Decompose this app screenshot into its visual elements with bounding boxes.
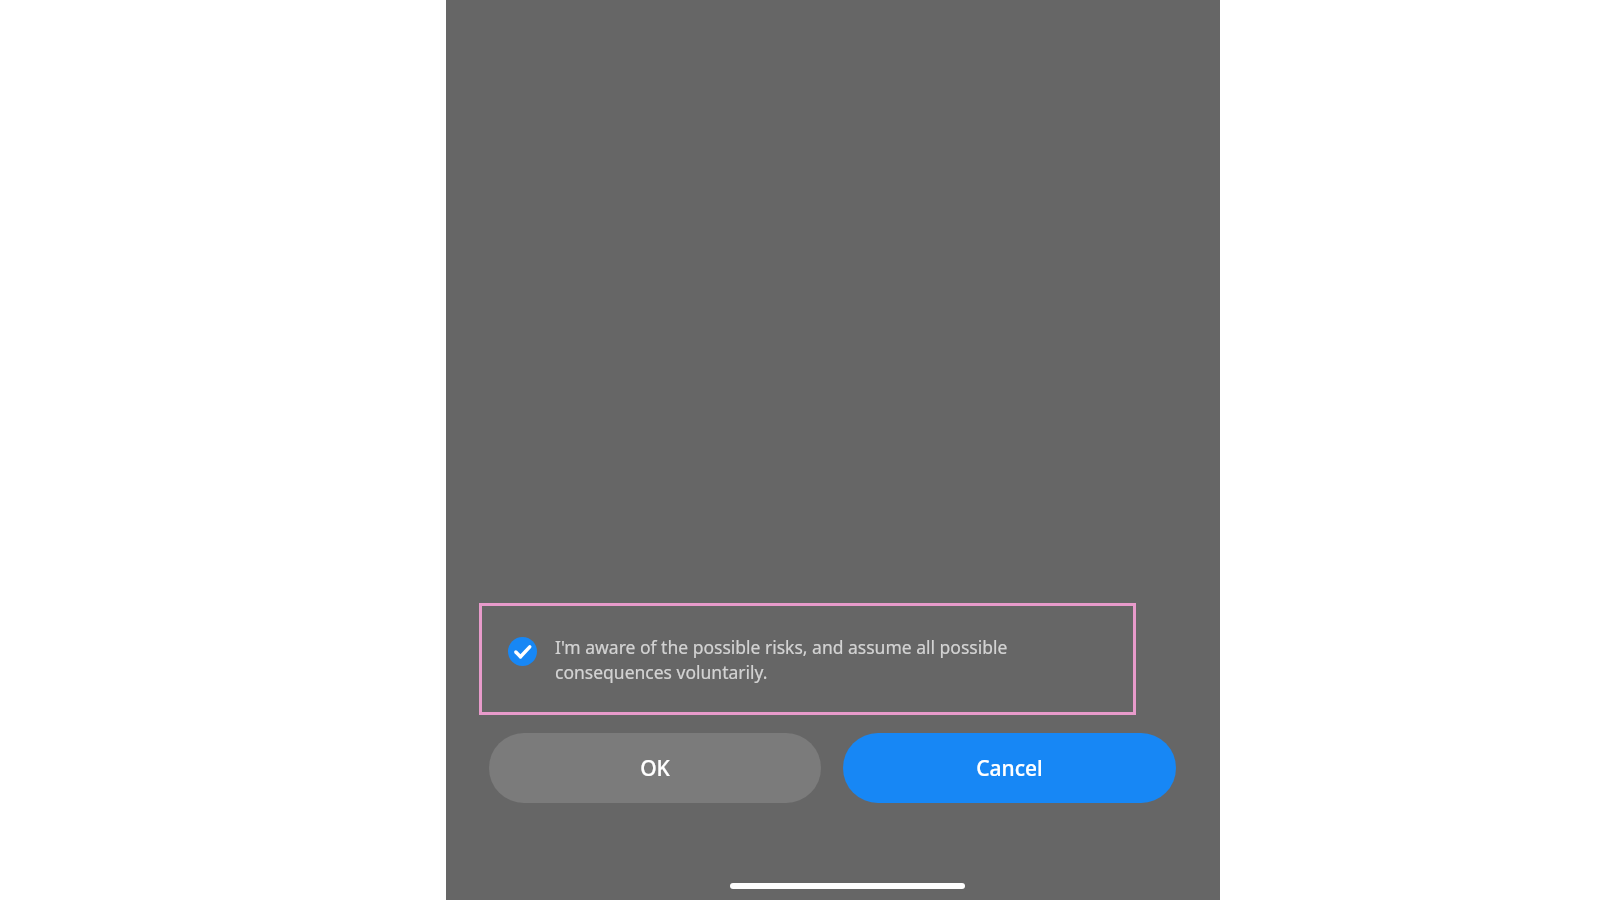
other: Checked [508,637,537,666]
button[interactable]: OK [489,733,821,803]
button[interactable]: Cancel [843,733,1176,803]
staticText: Cancel [976,754,1043,783]
button[interactable]: Checked [479,603,1136,715]
staticText: OK [640,754,670,783]
staticText: I'm aware of the possible risks, and ass… [555,635,1112,684]
